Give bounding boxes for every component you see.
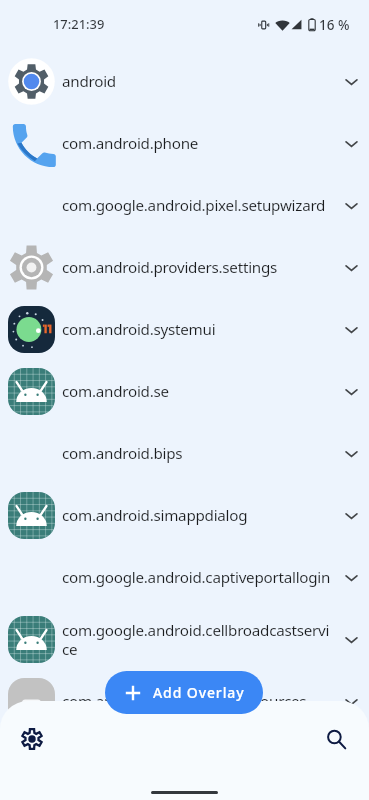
staticText: android <box>62 71 332 92</box>
staticText: 16 % <box>319 16 350 34</box>
staticText: com.android.se <box>62 381 332 402</box>
staticText: com.android.providers.settings <box>62 257 332 278</box>
staticText: com.android.phone <box>62 133 332 154</box>
staticText: com.android.systemui <box>62 319 332 340</box>
button[interactable]: com.android.phone <box>0 112 369 174</box>
button[interactable]: android <box>0 50 369 112</box>
staticText: Add Overlay <box>153 683 245 702</box>
staticText: com.google.android.captiveportallogin <box>62 567 332 588</box>
button[interactable]: com.android.simappdialog <box>0 484 369 546</box>
staticText: com.google.android.cellbroadcastservice <box>62 620 332 659</box>
button[interactable]: Settings <box>14 721 50 757</box>
button[interactable]: com.android.providers.settings <box>0 236 369 298</box>
staticText: com.android.bips <box>62 443 332 464</box>
button[interactable]: Search <box>318 721 354 757</box>
staticText: 17:21:39 <box>53 15 105 33</box>
button[interactable]: com.google.android.captiveportallogin <box>0 546 369 608</box>
staticText: com.android.connectivity.resources <box>62 691 332 712</box>
button[interactable]: com.android.connectivity.resources <box>0 670 369 732</box>
button[interactable]: com.android.bips <box>0 422 369 484</box>
staticText: com.google.android.pixel.setupwizard <box>62 195 332 216</box>
button[interactable]: Add Overlay <box>105 671 263 714</box>
button[interactable]: com.google.android.cellbroadcastservice <box>0 608 369 670</box>
button[interactable]: com.android.systemui <box>0 298 369 360</box>
button[interactable]: com.google.android.pixel.setupwizard <box>0 174 369 236</box>
button[interactable]: com.android.se <box>0 360 369 422</box>
staticText: com.android.simappdialog <box>62 505 332 526</box>
